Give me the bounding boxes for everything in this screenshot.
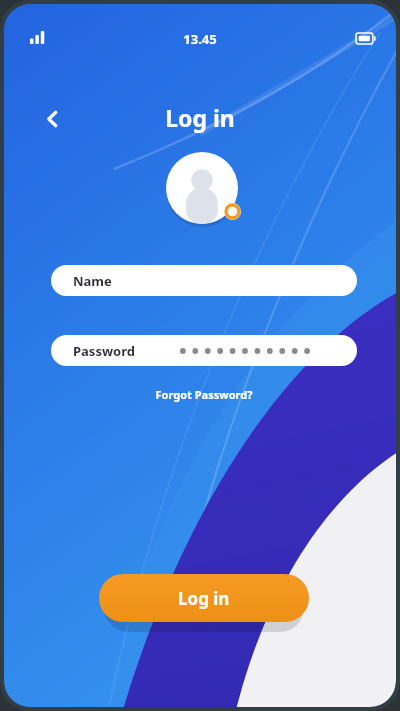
button[interactable]: Name (51, 265, 357, 296)
staticText: 13.45 (4, 30, 396, 707)
button[interactable]: Log in (99, 574, 309, 622)
button[interactable]: Password (51, 335, 357, 366)
staticText: Log in (178, 587, 230, 610)
staticText: Forgot Password? (144, 387, 264, 405)
staticText: Log in (4, 102, 396, 707)
button[interactable]: Back (35, 103, 67, 135)
staticText: Name (73, 272, 112, 290)
staticText: Password (73, 342, 135, 360)
button[interactable]: Forgot Password? (144, 387, 264, 405)
